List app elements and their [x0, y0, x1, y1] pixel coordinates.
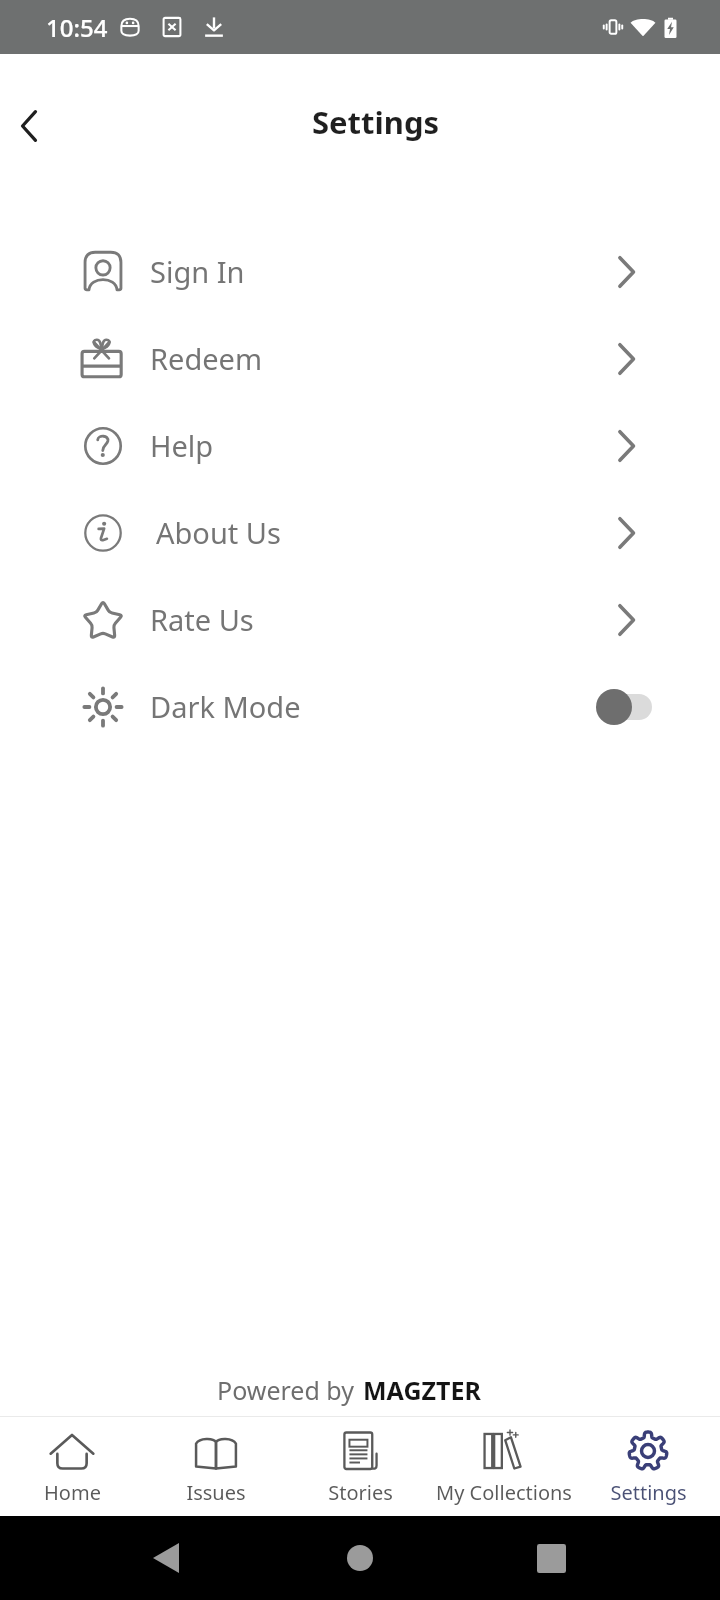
- button[interactable]: Settings: [576, 1416, 720, 1516]
- button[interactable]: Home: [324, 1522, 396, 1594]
- button[interactable]: Back: [3, 100, 55, 152]
- staticText: Home: [44, 1479, 101, 1506]
- button[interactable]: About Us: [0, 489, 720, 576]
- staticText: Stories: [328, 1479, 393, 1506]
- button[interactable]: Stories: [288, 1416, 432, 1516]
- button[interactable]: My Collections: [432, 1416, 576, 1516]
- button[interactable]: Issues: [144, 1416, 288, 1516]
- button[interactable]: Redeem: [0, 315, 720, 402]
- staticText: MAGZTER: [363, 1373, 481, 1407]
- button[interactable]: Back: [130, 1522, 202, 1594]
- staticText: Help: [150, 426, 214, 465]
- button[interactable]: Recent apps: [515, 1522, 587, 1594]
- staticText: Issues: [186, 1479, 246, 1506]
- staticText: Redeem: [150, 339, 263, 378]
- staticText: Settings: [610, 1479, 687, 1506]
- staticText: My Collections: [436, 1479, 572, 1506]
- staticText: Dark Mode: [150, 687, 301, 726]
- button[interactable]: Home: [0, 1416, 144, 1516]
- staticText: 10:54: [46, 11, 108, 44]
- button[interactable]: Dark Mode toggle: [596, 687, 652, 727]
- staticText: Powered by: [217, 1373, 354, 1407]
- staticText: Rate Us: [150, 600, 254, 639]
- staticText: Sign In: [150, 252, 245, 291]
- staticText: About Us: [156, 513, 281, 552]
- button[interactable]: Sign In: [0, 228, 720, 315]
- button[interactable]: Help: [0, 402, 720, 489]
- staticText: Settings: [312, 101, 440, 143]
- button[interactable]: Rate Us: [0, 576, 720, 663]
- button[interactable]: Dark Mode: [0, 663, 720, 750]
